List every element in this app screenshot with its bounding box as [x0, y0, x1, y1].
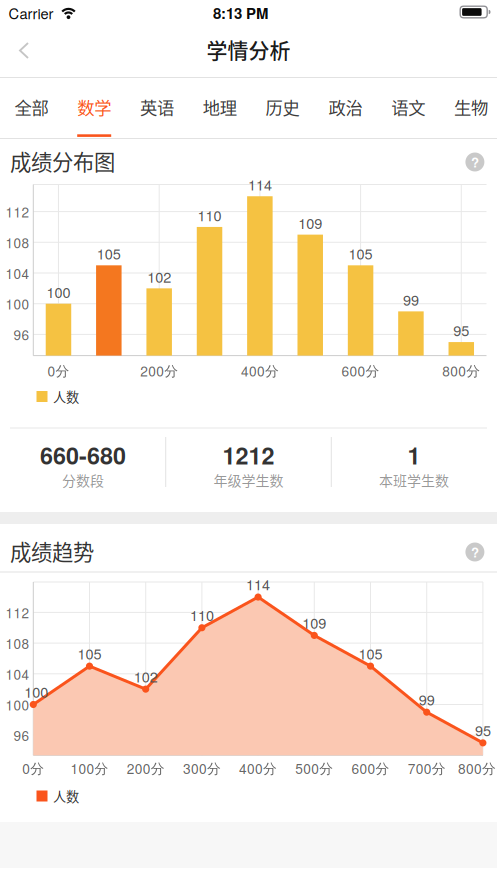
- staticText: 1: [407, 438, 420, 472]
- staticText: 人数: [53, 387, 79, 406]
- staticText: 数学: [77, 94, 111, 120]
- staticText: 110: [197, 204, 221, 225]
- button[interactable]: Help: [465, 152, 484, 172]
- staticText: 660-680: [40, 438, 126, 472]
- staticText: 104: [5, 263, 29, 283]
- staticText: 1212: [222, 438, 274, 472]
- staticText: 历史: [266, 94, 300, 120]
- staticText: 114: [246, 574, 270, 594]
- staticText: 英语: [140, 94, 174, 120]
- staticText: 112: [5, 202, 29, 221]
- button[interactable]: Back: [18, 42, 42, 60]
- staticText: 99: [403, 289, 419, 310]
- staticText: 96: [13, 325, 29, 344]
- staticText: 600分: [342, 361, 380, 380]
- button[interactable]: 英语: [129, 85, 185, 129]
- staticText: 112: [5, 603, 29, 622]
- staticText: 人数: [53, 786, 79, 805]
- staticText: 政治: [328, 94, 362, 120]
- staticText: 800分: [442, 361, 480, 380]
- staticText: 99: [419, 689, 435, 710]
- staticText: 100分: [70, 758, 108, 778]
- staticText: ?: [471, 152, 479, 172]
- staticText: Carrier: [8, 2, 53, 23]
- staticText: 600分: [351, 758, 389, 778]
- staticText: 114: [248, 174, 272, 195]
- staticText: 分数段: [62, 470, 104, 490]
- button[interactable]: 全部: [3, 85, 59, 129]
- staticText: 95: [475, 719, 491, 740]
- button[interactable]: 政治: [317, 85, 373, 129]
- staticText: 生物: [454, 94, 488, 120]
- staticText: 0分: [22, 758, 44, 778]
- staticText: 105: [97, 243, 121, 264]
- staticText: 109: [298, 212, 322, 233]
- staticText: 108: [5, 233, 29, 252]
- staticText: 300分: [183, 758, 221, 778]
- staticText: 100: [5, 294, 29, 313]
- button[interactable]: 数学: [66, 85, 122, 129]
- button[interactable]: 语文: [380, 85, 436, 129]
- staticText: 学情分析: [206, 34, 290, 64]
- staticText: 108: [5, 633, 29, 653]
- staticText: 500分: [295, 758, 333, 778]
- button[interactable]: 生物: [443, 85, 497, 129]
- staticText: 200分: [140, 361, 178, 380]
- staticText: 700分: [408, 758, 446, 778]
- staticText: 0分: [47, 361, 69, 380]
- staticText: 年级学生数: [213, 470, 283, 490]
- staticText: 104: [5, 664, 29, 684]
- staticText: 109: [302, 612, 326, 633]
- staticText: ?: [471, 542, 479, 562]
- staticText: 400分: [239, 758, 277, 778]
- staticText: 102: [134, 666, 158, 686]
- staticText: 96: [13, 725, 29, 745]
- staticText: 成绩分布图: [10, 146, 115, 176]
- staticText: 8:13 PM: [213, 2, 268, 24]
- staticText: 110: [190, 604, 214, 625]
- staticText: 800分: [458, 758, 496, 778]
- staticText: 语文: [391, 94, 425, 120]
- staticText: 100: [5, 695, 29, 714]
- staticText: 100: [46, 281, 70, 302]
- staticText: 400分: [241, 361, 279, 380]
- button[interactable]: 地理: [192, 85, 248, 129]
- staticText: 95: [453, 320, 469, 340]
- staticText: 105: [77, 643, 101, 663]
- staticText: 地理: [203, 94, 237, 120]
- button[interactable]: Help: [465, 542, 484, 562]
- staticText: 105: [358, 643, 382, 663]
- staticText: 100: [24, 681, 48, 702]
- staticText: 200分: [127, 758, 165, 778]
- staticText: 成绩趋势: [10, 536, 94, 566]
- staticText: 102: [147, 266, 171, 287]
- staticText: 全部: [14, 94, 48, 120]
- staticText: 本班学生数: [379, 470, 449, 490]
- button[interactable]: 历史: [255, 85, 311, 129]
- staticText: 105: [349, 243, 373, 264]
